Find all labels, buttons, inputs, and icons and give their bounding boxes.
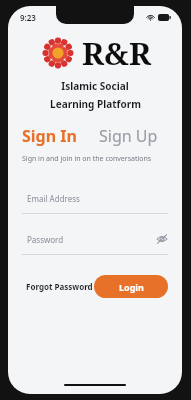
staticText: Password: [27, 234, 64, 245]
staticText: Sign In: [22, 125, 77, 147]
button[interactable]: Sign Up: [99, 125, 158, 147]
button[interactable]: Forgot Password: [26, 281, 93, 292]
staticText: Islamic Social: [61, 79, 129, 93]
staticText: R&R: [82, 32, 151, 74]
button[interactable]: Login: [94, 275, 168, 298]
staticText: Sign in and join in on the conversations: [22, 154, 152, 164]
staticText: 9:23: [20, 12, 36, 23]
button[interactable]: Sign In: [22, 125, 77, 147]
staticText: Forgot Password: [26, 281, 93, 292]
staticText: Email Address: [27, 193, 80, 204]
staticText: Login: [119, 281, 144, 293]
button[interactable]: Show password: [156, 233, 168, 245]
staticText: Learning Platform: [50, 97, 141, 111]
staticText: Sign Up: [99, 125, 158, 147]
button[interactable]: Email Address: [22, 190, 168, 214]
button[interactable]: Password: [22, 231, 168, 255]
